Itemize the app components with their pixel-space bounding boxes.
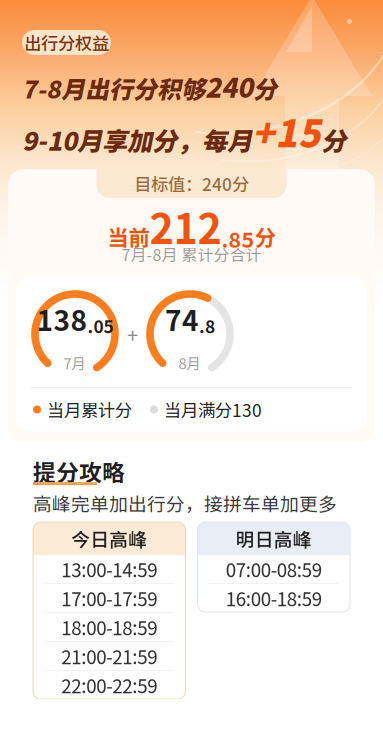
staticText: 分 — [254, 221, 275, 252]
staticText: 22:00-22:59 — [61, 672, 157, 699]
staticText: 高峰完单加出行分，接拼车单加更多 — [33, 490, 337, 517]
staticText: 明日高峰 — [236, 525, 312, 552]
staticText: 7-8月出行分积够 — [22, 71, 205, 105]
staticText: 当月累计分 — [47, 397, 132, 422]
staticText: 当前 — [107, 221, 149, 252]
staticText: 07:00-08:59 — [226, 556, 322, 583]
staticText: .8 — [199, 313, 215, 338]
staticText: 分 — [321, 121, 346, 158]
staticText: 18:00-18:59 — [61, 614, 157, 641]
staticText: 8月 — [178, 352, 201, 373]
staticText: 13:00-14:59 — [61, 556, 157, 583]
staticText: 当月满分130 — [164, 397, 262, 422]
staticText: 提分攻略 — [33, 455, 125, 487]
staticText: 74 — [165, 299, 199, 339]
staticText: 138 — [36, 299, 87, 339]
staticText: .05 — [87, 313, 113, 338]
staticText: +15 — [252, 104, 321, 158]
staticText: 9-10月享加分，每月 — [22, 121, 252, 158]
staticText: 17:00-17:59 — [61, 585, 157, 612]
staticText: 21:00-21:59 — [61, 643, 157, 670]
staticText: 16:00-18:59 — [226, 585, 322, 612]
staticText: + — [127, 319, 138, 348]
staticText: 7月-8月 累计分合计 — [121, 242, 261, 266]
staticText: 212 — [149, 196, 221, 256]
staticText: 分 — [253, 71, 277, 105]
staticText: 目标值：240分 — [134, 171, 249, 196]
staticText: 240 — [205, 67, 253, 105]
staticText: 7月 — [63, 352, 86, 373]
staticText: .85 — [221, 223, 254, 254]
staticText: 今日高峰 — [71, 525, 147, 552]
staticText: 出行分权益 — [24, 30, 109, 55]
